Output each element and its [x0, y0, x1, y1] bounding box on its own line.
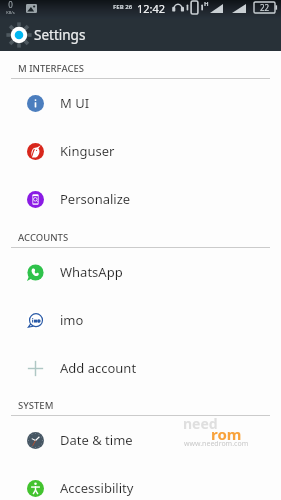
staticText: SYSTEM — [18, 399, 54, 412]
staticText: M UI — [60, 94, 90, 112]
button[interactable]: imo — [0, 296, 281, 344]
staticText: 12:42 — [137, 1, 166, 16]
staticText: www.needrom.com — [184, 439, 249, 449]
staticText: Settings — [34, 26, 86, 44]
button[interactable]: Accessibility — [0, 464, 281, 500]
staticText: ACCOUNTS — [18, 231, 69, 244]
staticText: Personalize — [60, 190, 131, 208]
button[interactable]: Add account — [0, 344, 281, 392]
button[interactable]: M UI — [0, 79, 281, 127]
staticText: KB/s — [6, 10, 15, 15]
button[interactable]: Kinguser — [0, 127, 281, 175]
staticText: H — [204, 0, 209, 8]
staticText: Add account — [60, 359, 137, 377]
button[interactable]: Date & time — [0, 416, 281, 464]
staticText: rom — [211, 424, 242, 444]
staticText: Accessibility — [60, 479, 134, 497]
button[interactable]: Settings icon — [8, 24, 30, 46]
button[interactable]: WhatsApp — [0, 248, 281, 296]
staticText: M INTERFACES — [18, 62, 84, 75]
staticText: 22 — [260, 2, 270, 13]
staticText: FEB 26 — [113, 3, 133, 11]
staticText: imo — [60, 311, 84, 329]
staticText: WhatsApp — [60, 263, 123, 281]
staticText: need — [183, 414, 218, 433]
button[interactable]: Personalize — [0, 175, 281, 223]
staticText: Date & time — [60, 431, 133, 449]
staticText: 0 — [8, 0, 13, 10]
staticText: Kinguser — [60, 142, 115, 160]
